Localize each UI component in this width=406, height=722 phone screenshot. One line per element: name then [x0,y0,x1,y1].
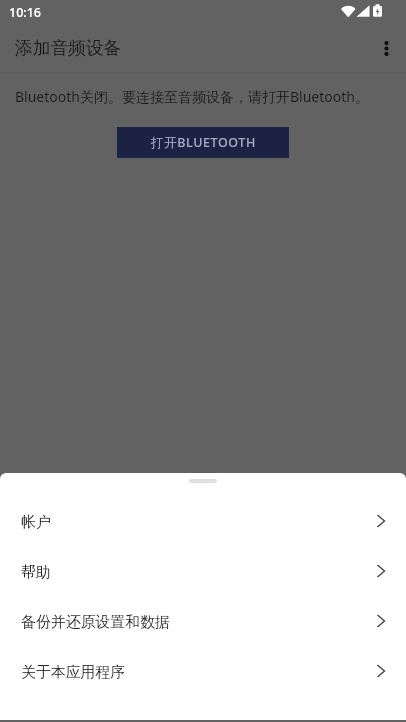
button[interactable]: 帮助 [0,547,406,597]
button[interactable]: 关于本应用程序 [0,647,406,697]
staticText: 打开BLUETOOTH [151,134,256,151]
staticText: 备份并还原设置和数据 [21,613,170,632]
button[interactable]: 备份并还原设置和数据 [0,597,406,647]
button[interactable]: More options [362,26,406,72]
button[interactable]: 帐户 [0,497,406,547]
staticText: 帐户 [21,513,51,532]
staticText: 10:16 [9,4,42,21]
staticText: Bluetooth关闭。要连接至音频设备，请打开Bluetooth。 [15,87,369,106]
button[interactable]: 打开BLUETOOTH [117,127,289,158]
staticText: 关于本应用程序 [21,663,126,682]
staticText: 添加音频设备 [15,37,122,59]
staticText: 帮助 [21,563,51,582]
